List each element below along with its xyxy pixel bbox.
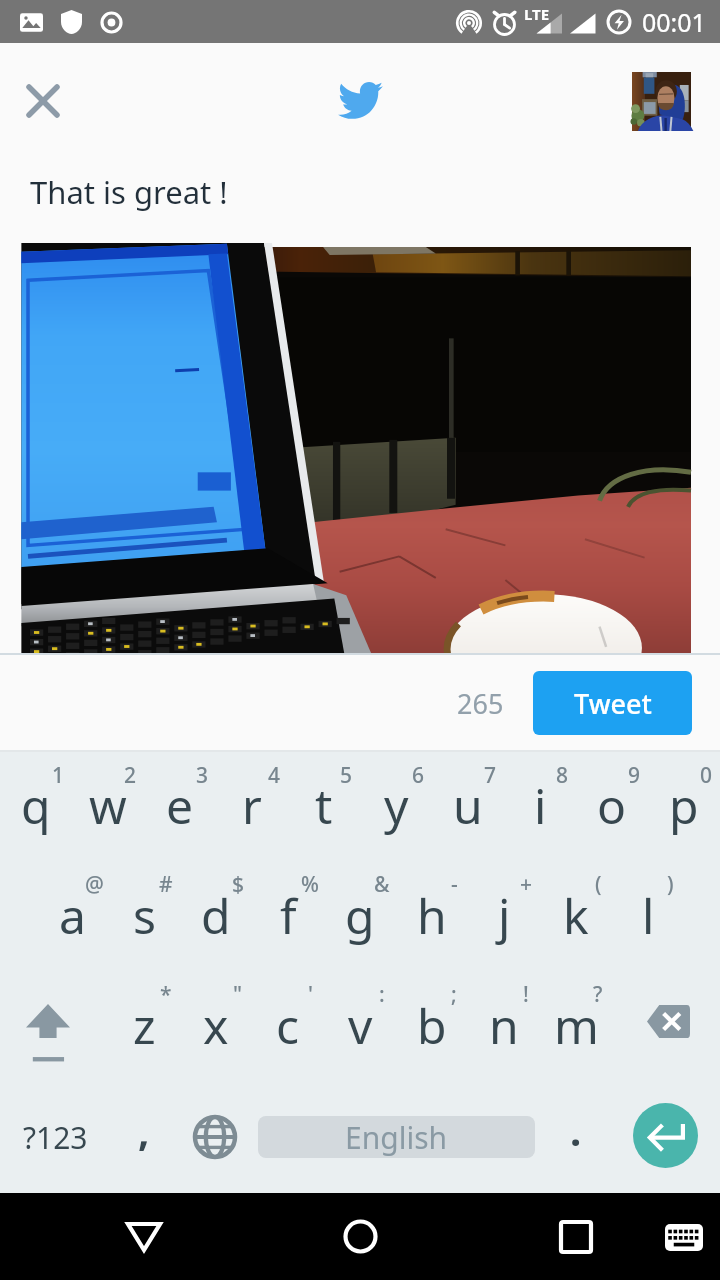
button[interactable]: . xyxy=(540,1081,612,1193)
staticText: w xyxy=(89,773,127,838)
staticText: ( xyxy=(595,870,602,899)
button[interactable]: ! xyxy=(468,971,540,1081)
staticText: 0 xyxy=(700,761,713,790)
button[interactable]: 3 xyxy=(144,752,216,861)
staticText: ' xyxy=(308,980,313,1009)
button[interactable]: ) xyxy=(612,861,684,971)
button[interactable]: Backspace xyxy=(612,971,720,1081)
button[interactable]: @ xyxy=(36,861,108,971)
staticText: z xyxy=(133,993,156,1058)
button[interactable]: 1 xyxy=(0,752,72,861)
button[interactable]: ( xyxy=(540,861,612,971)
staticText: x xyxy=(203,993,229,1058)
staticText: v xyxy=(348,993,373,1058)
staticText: m xyxy=(554,993,599,1058)
button[interactable]: Attached photo xyxy=(28,247,691,653)
button[interactable]: Close xyxy=(9,67,77,135)
staticText: + xyxy=(520,870,533,899)
staticText: ; xyxy=(451,980,457,1009)
button[interactable]: : xyxy=(324,971,396,1081)
staticText: $ xyxy=(232,870,245,899)
staticText: * xyxy=(160,980,172,1009)
button[interactable]: ? xyxy=(540,971,612,1081)
staticText: t xyxy=(315,773,333,838)
staticText: 9 xyxy=(628,761,641,790)
button[interactable]: Change language xyxy=(180,1081,250,1193)
staticText: k xyxy=(563,883,589,948)
staticText: , xyxy=(138,1103,150,1157)
button[interactable]: + xyxy=(468,861,540,971)
staticText: . xyxy=(570,1103,582,1157)
button[interactable]: Profile xyxy=(632,72,691,131)
staticText: n xyxy=(489,993,519,1058)
staticText: 265 xyxy=(457,685,504,722)
staticText: % xyxy=(301,870,319,899)
button[interactable]: 2 xyxy=(72,752,144,861)
button[interactable]: $ xyxy=(180,861,252,971)
staticText: 2 xyxy=(124,761,137,790)
button[interactable]: Switch keyboard xyxy=(654,1207,714,1267)
staticText: u xyxy=(453,773,483,838)
button[interactable]: - xyxy=(396,861,468,971)
staticText: y xyxy=(384,773,409,838)
button[interactable]: , xyxy=(108,1081,180,1193)
staticText: q xyxy=(21,773,51,838)
staticText: 5 xyxy=(340,761,353,790)
staticText: i xyxy=(534,773,547,838)
staticText: # xyxy=(159,870,173,899)
button[interactable]: English xyxy=(258,1116,535,1158)
button[interactable]: 6 xyxy=(360,752,432,861)
button[interactable]: Home xyxy=(316,1193,404,1280)
staticText: 00:01 xyxy=(642,5,706,39)
staticText: ! xyxy=(523,980,529,1009)
button[interactable]: & xyxy=(324,861,396,971)
button[interactable]: * xyxy=(108,971,180,1081)
button[interactable]: 8 xyxy=(504,752,576,861)
staticText: c xyxy=(276,993,300,1058)
staticText: " xyxy=(233,980,243,1009)
staticText: j xyxy=(498,883,511,948)
button[interactable]: ; xyxy=(396,971,468,1081)
staticText: 8 xyxy=(556,761,569,790)
button[interactable]: Recents xyxy=(532,1193,620,1280)
staticText: ) xyxy=(667,870,674,899)
staticText: LTE xyxy=(524,4,550,24)
staticText: & xyxy=(374,870,390,899)
button[interactable]: 9 xyxy=(576,752,648,861)
button[interactable]: Tweet xyxy=(533,671,692,735)
button[interactable]: 0 xyxy=(648,752,720,861)
staticText: 4 xyxy=(268,761,281,790)
button[interactable]: Enter xyxy=(633,1103,698,1168)
staticText: : xyxy=(379,980,385,1009)
staticText: d xyxy=(201,883,231,948)
staticText: 6 xyxy=(412,761,425,790)
button[interactable]: 7 xyxy=(432,752,504,861)
staticText: 1 xyxy=(52,761,65,790)
button[interactable]: ?123 xyxy=(12,1081,98,1193)
button[interactable]: 4 xyxy=(216,752,288,861)
staticText: - xyxy=(451,870,458,899)
button[interactable]: " xyxy=(180,971,252,1081)
staticText: s xyxy=(133,883,156,948)
staticText: r xyxy=(242,773,262,838)
staticText: f xyxy=(280,883,297,948)
staticText: ?123 xyxy=(23,1117,88,1158)
staticText: g xyxy=(345,883,375,948)
button[interactable]: Shift xyxy=(0,971,108,1081)
staticText: English xyxy=(345,1117,448,1158)
button[interactable]: Back xyxy=(100,1193,188,1280)
staticText: @ xyxy=(85,870,104,899)
staticText: p xyxy=(669,773,699,838)
staticText: h xyxy=(417,883,447,948)
button[interactable]: ' xyxy=(252,971,324,1081)
button[interactable]: % xyxy=(252,861,324,971)
staticText: 3 xyxy=(196,761,209,790)
staticText: 7 xyxy=(484,761,497,790)
staticText: a xyxy=(59,883,86,948)
button[interactable]: 5 xyxy=(288,752,360,861)
staticText: That is great ! xyxy=(30,171,228,213)
staticText: Tweet xyxy=(574,685,652,722)
button[interactable]: # xyxy=(108,861,180,971)
staticText: b xyxy=(417,993,447,1058)
staticText: o xyxy=(597,773,627,838)
